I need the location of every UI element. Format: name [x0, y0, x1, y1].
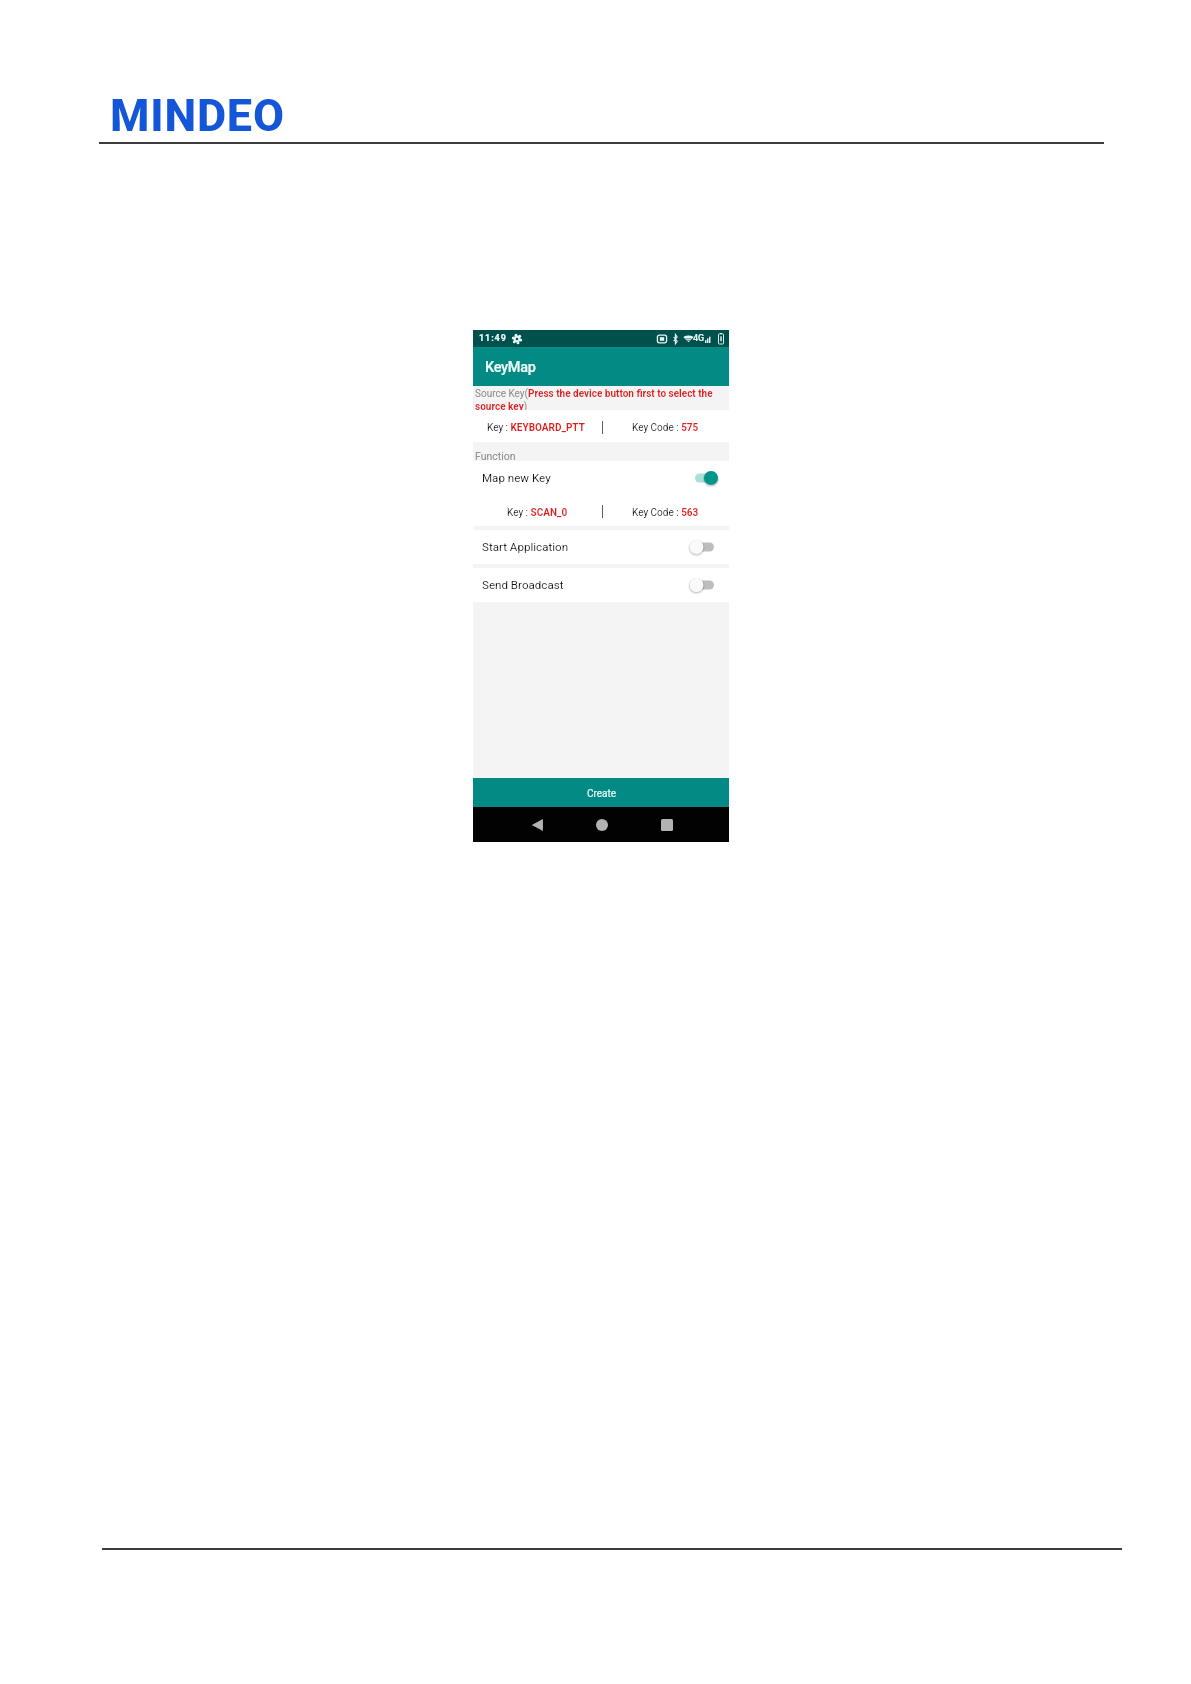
- staticText: KeyMap: [485, 359, 536, 376]
- staticText: Function: [475, 450, 516, 462]
- staticText: Start Application: [482, 540, 569, 554]
- staticText: Key : KEYBOARD_PTT: [487, 422, 585, 434]
- button[interactable]: Home: [584, 807, 619, 842]
- staticText: Key : SCAN_0: [507, 507, 568, 519]
- staticText: Map new Key: [482, 471, 551, 485]
- button[interactable]: Send Broadcast: [473, 568, 729, 602]
- staticText: Source Key(Press the device button first…: [475, 388, 727, 412]
- staticText: Create: [587, 788, 617, 800]
- button[interactable]: Back: [520, 807, 555, 842]
- button[interactable]: Recent apps: [649, 807, 684, 842]
- staticText: Key Code : 575: [632, 422, 699, 434]
- button[interactable]: Key : KEYBOARD_PTT: [473, 410, 729, 442]
- button[interactable]: Start Application: [473, 530, 729, 564]
- staticText: Send Broadcast: [482, 578, 564, 592]
- staticText: 4G: [693, 333, 705, 344]
- staticText: MINDEO: [110, 89, 285, 142]
- staticText: 11:49: [479, 333, 507, 344]
- button[interactable]: Create: [473, 778, 729, 807]
- staticText: Key Code : 563: [632, 507, 699, 519]
- button[interactable]: Key : SCAN_0: [473, 495, 729, 526]
- button[interactable]: Map new Key: [473, 461, 729, 495]
